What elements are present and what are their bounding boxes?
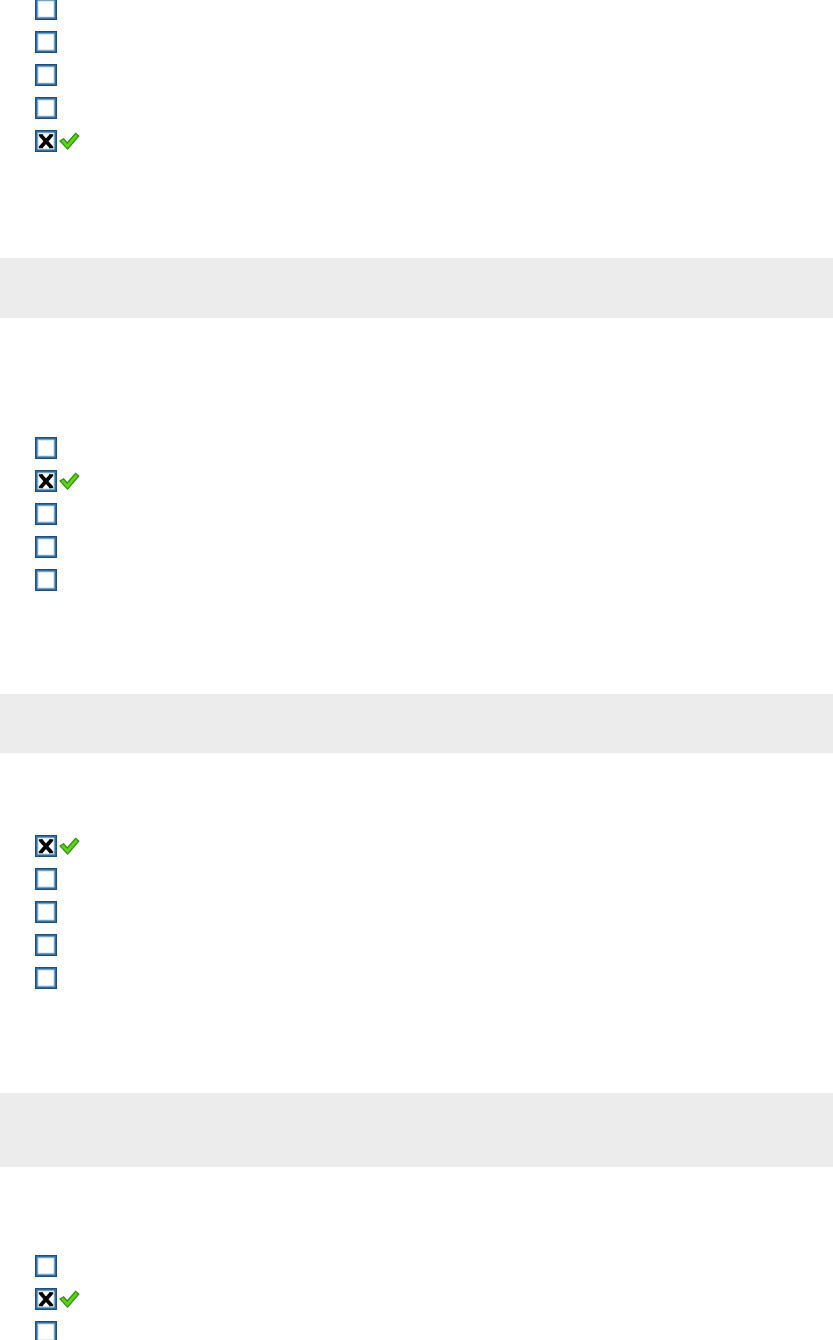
button[interactable]: Unselected answer option: [35, 503, 57, 525]
button[interactable]: Unselected answer option: [35, 901, 57, 923]
button[interactable]: Selected answer option: [35, 130, 57, 152]
other: Correct answer: [59, 837, 79, 855]
button[interactable]: Unselected answer option: [35, 437, 57, 459]
button[interactable]: Unselected answer option: [35, 97, 57, 119]
other: Correct answer: [59, 1290, 79, 1308]
button[interactable]: Unselected answer option: [35, 934, 57, 956]
button[interactable]: Unselected answer option: [35, 569, 57, 591]
button[interactable]: Unselected answer option: [35, 64, 57, 86]
other: Correct answer: [59, 472, 79, 490]
button[interactable]: Unselected answer option: [35, 1321, 57, 1340]
button[interactable]: Unselected answer option: [35, 536, 57, 558]
button[interactable]: Selected answer option: [35, 1288, 57, 1310]
button[interactable]: Unselected answer option: [35, 967, 57, 989]
button[interactable]: Unselected answer option: [35, 1255, 57, 1277]
button[interactable]: Unselected answer option: [35, 0, 57, 20]
other: Correct answer: [59, 132, 79, 150]
button[interactable]: Selected answer option: [35, 835, 57, 857]
button[interactable]: Selected answer option: [35, 470, 57, 492]
button[interactable]: Unselected answer option: [35, 31, 57, 53]
button[interactable]: Unselected answer option: [35, 868, 57, 890]
